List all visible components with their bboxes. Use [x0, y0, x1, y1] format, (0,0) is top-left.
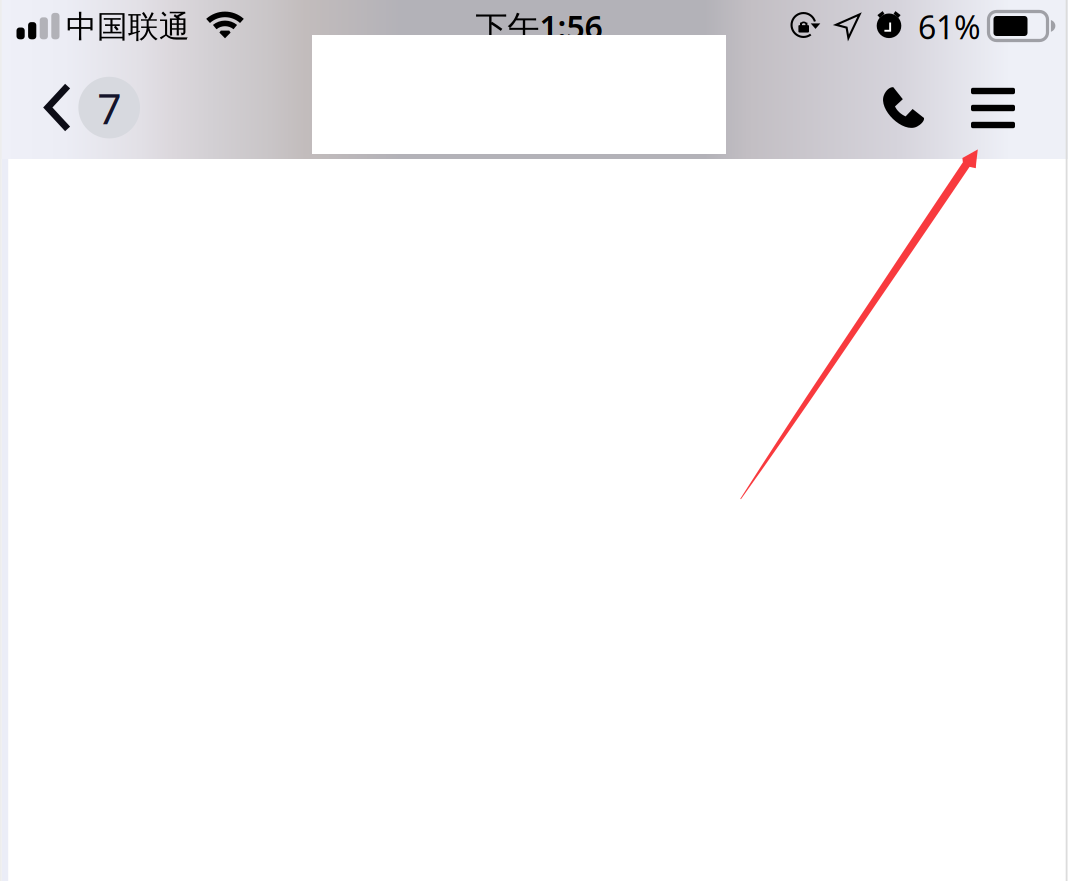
button[interactable]: Call — [861, 66, 945, 150]
staticText: 61% — [918, 6, 981, 48]
button[interactable]: Menu — [951, 66, 1035, 150]
staticText: 中国联通 — [66, 8, 190, 46]
staticText: 下午1:56 — [475, 5, 602, 48]
button[interactable]: Back — [10, 58, 160, 158]
staticText: 7 — [97, 79, 121, 136]
